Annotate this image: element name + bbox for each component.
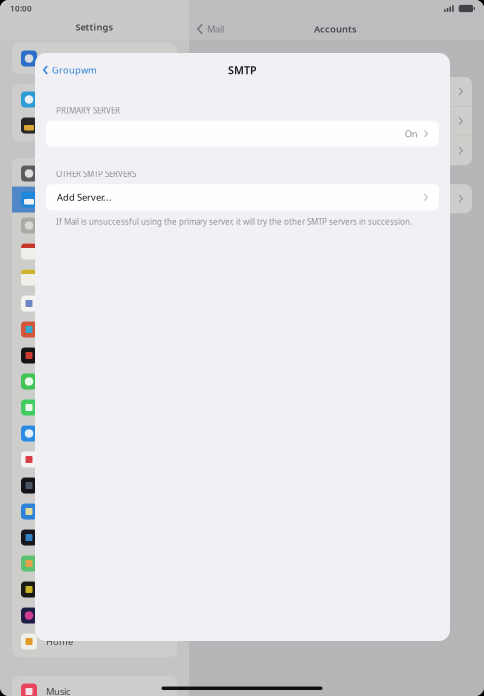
button[interactable]: Settings item <box>12 290 177 316</box>
staticText: 10:00 <box>10 3 32 14</box>
button[interactable]: Settings item <box>12 368 177 394</box>
button[interactable]: Settings item <box>12 186 177 212</box>
button[interactable]: Settings item <box>12 212 177 238</box>
button[interactable]: Settings item <box>12 602 177 628</box>
staticText: Add Server... <box>57 191 112 203</box>
staticText: SMTP <box>228 63 257 77</box>
staticText: Groupwm <box>52 64 97 76</box>
button[interactable]: Add Server... <box>46 184 439 210</box>
button[interactable]: Settings item <box>12 550 177 576</box>
staticText: OTHER SMTP SERVERS <box>56 169 136 179</box>
staticText: Accounts <box>314 23 357 35</box>
staticText: Mail <box>207 23 224 35</box>
button[interactable]: Settings item <box>12 394 177 420</box>
staticText: Settings <box>75 21 113 33</box>
staticText: Music <box>46 685 70 696</box>
staticText: On <box>405 127 418 140</box>
button[interactable]: Account <box>201 107 472 136</box>
button[interactable]: Settings item <box>12 316 177 342</box>
button[interactable]: Home <box>12 628 177 654</box>
button[interactable]: Account <box>201 184 472 213</box>
button[interactable]: Privacy & Security <box>12 45 177 71</box>
staticText: Home <box>46 635 73 648</box>
staticText: If Mail is unsuccessful using the primar… <box>56 216 412 227</box>
button[interactable]: Settings item <box>12 446 177 472</box>
button[interactable]: Music <box>12 678 177 696</box>
button[interactable]: On <box>46 121 439 147</box>
button[interactable]: Groupwm <box>35 59 97 81</box>
staticText: Privacy & Security <box>46 52 122 65</box>
button[interactable]: Account <box>201 136 472 165</box>
button[interactable]: Settings item <box>12 160 177 186</box>
button[interactable]: Settings item <box>12 86 177 112</box>
button[interactable]: Settings item <box>12 238 177 264</box>
staticText: PRIMARY SERVER <box>56 105 120 116</box>
button[interactable]: Settings item <box>12 420 177 446</box>
button[interactable]: Mail <box>189 19 224 39</box>
button[interactable]: Settings item <box>12 112 177 138</box>
button[interactable]: Settings item <box>12 498 177 524</box>
button[interactable]: Settings item <box>12 524 177 550</box>
button[interactable]: Account <box>201 77 472 106</box>
button[interactable]: Settings item <box>12 342 177 368</box>
button[interactable]: Settings item <box>12 264 177 290</box>
button[interactable]: Settings item <box>12 472 177 498</box>
button[interactable]: Settings item <box>12 576 177 602</box>
